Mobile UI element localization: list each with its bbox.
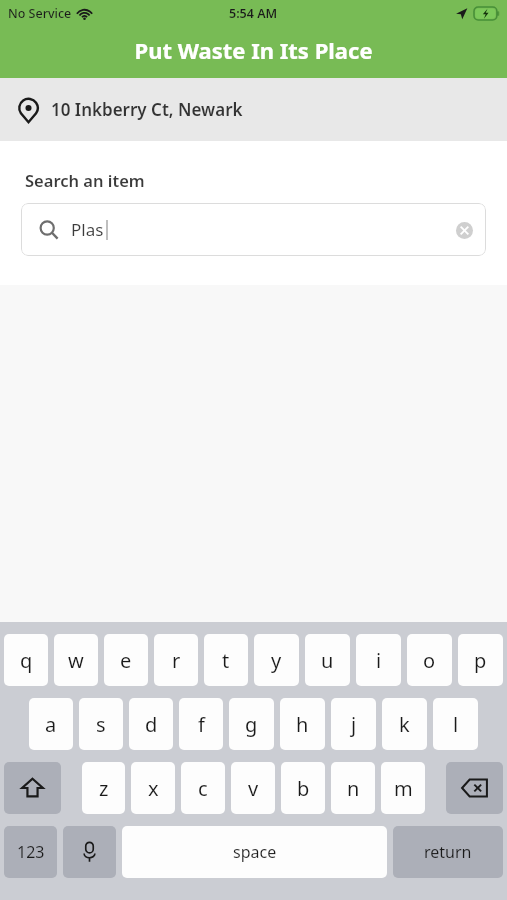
staticText: t	[222, 647, 230, 674]
button[interactable]: o	[407, 634, 452, 686]
button[interactable]: Backspace	[446, 762, 503, 814]
staticText: 10 Inkberry Ct, Newark	[51, 98, 243, 121]
staticText: u	[321, 647, 334, 674]
staticText: r	[172, 647, 181, 674]
button[interactable]: p	[458, 634, 503, 686]
button[interactable]: y	[254, 634, 299, 686]
staticText: o	[423, 647, 436, 674]
button[interactable]: g	[229, 698, 274, 750]
staticText: w	[68, 647, 84, 674]
button[interactable]: v	[231, 762, 275, 814]
button[interactable]: Shift	[4, 762, 61, 814]
staticText: z	[99, 775, 109, 802]
button[interactable]: a	[29, 698, 73, 750]
button[interactable]: t	[204, 634, 248, 686]
staticText: Put Waste In Its Place	[134, 35, 373, 65]
button[interactable]: w	[54, 634, 98, 686]
button[interactable]: x	[131, 762, 175, 814]
staticText: i	[376, 647, 382, 674]
button[interactable]: Clear search	[447, 213, 481, 247]
staticText: k	[399, 711, 410, 738]
button[interactable]: k	[382, 698, 427, 750]
button[interactable]: i	[356, 634, 401, 686]
button[interactable]: l	[433, 698, 478, 750]
staticText: v	[248, 775, 259, 802]
staticText: a	[45, 711, 57, 738]
staticText: j	[351, 711, 357, 738]
staticText: n	[347, 775, 360, 802]
staticText: m	[394, 775, 413, 802]
button[interactable]: e	[104, 634, 148, 686]
button[interactable]: 123	[4, 826, 57, 878]
staticText: d	[145, 711, 158, 738]
staticText: p	[474, 647, 487, 674]
button[interactable]: u	[305, 634, 350, 686]
button[interactable]: Plas	[21, 203, 486, 256]
staticText: g	[245, 711, 258, 738]
button[interactable]: q	[4, 634, 48, 686]
button[interactable]: r	[154, 634, 198, 686]
button[interactable]: 10 Inkberry Ct, Newark	[0, 78, 507, 141]
staticText: q	[20, 647, 33, 674]
button[interactable]: Dictation	[63, 826, 116, 878]
staticText: Search an item	[25, 169, 145, 191]
staticText: f	[198, 711, 205, 738]
staticText: x	[148, 775, 159, 802]
button[interactable]: b	[281, 762, 325, 814]
button[interactable]: n	[331, 762, 375, 814]
staticText: space	[233, 841, 277, 863]
staticText: return	[424, 841, 472, 863]
staticText: 5:54 AM	[229, 5, 278, 22]
button[interactable]: s	[79, 698, 123, 750]
staticText: b	[297, 775, 310, 802]
staticText: h	[296, 711, 309, 738]
staticText: c	[198, 775, 208, 802]
staticText: Plas	[71, 218, 104, 241]
button[interactable]: f	[179, 698, 223, 750]
button[interactable]: h	[280, 698, 325, 750]
button[interactable]: d	[129, 698, 173, 750]
staticText: 123	[17, 841, 45, 863]
button[interactable]: c	[181, 762, 225, 814]
staticText: l	[453, 711, 459, 738]
staticText: No Service	[8, 5, 72, 22]
staticText: y	[271, 647, 282, 674]
button[interactable]: j	[331, 698, 376, 750]
button[interactable]: return	[393, 826, 503, 878]
button[interactable]: m	[381, 762, 425, 814]
staticText: s	[96, 711, 106, 738]
button[interactable]: space	[122, 826, 387, 878]
button[interactable]: z	[82, 762, 125, 814]
staticText: e	[120, 647, 132, 674]
